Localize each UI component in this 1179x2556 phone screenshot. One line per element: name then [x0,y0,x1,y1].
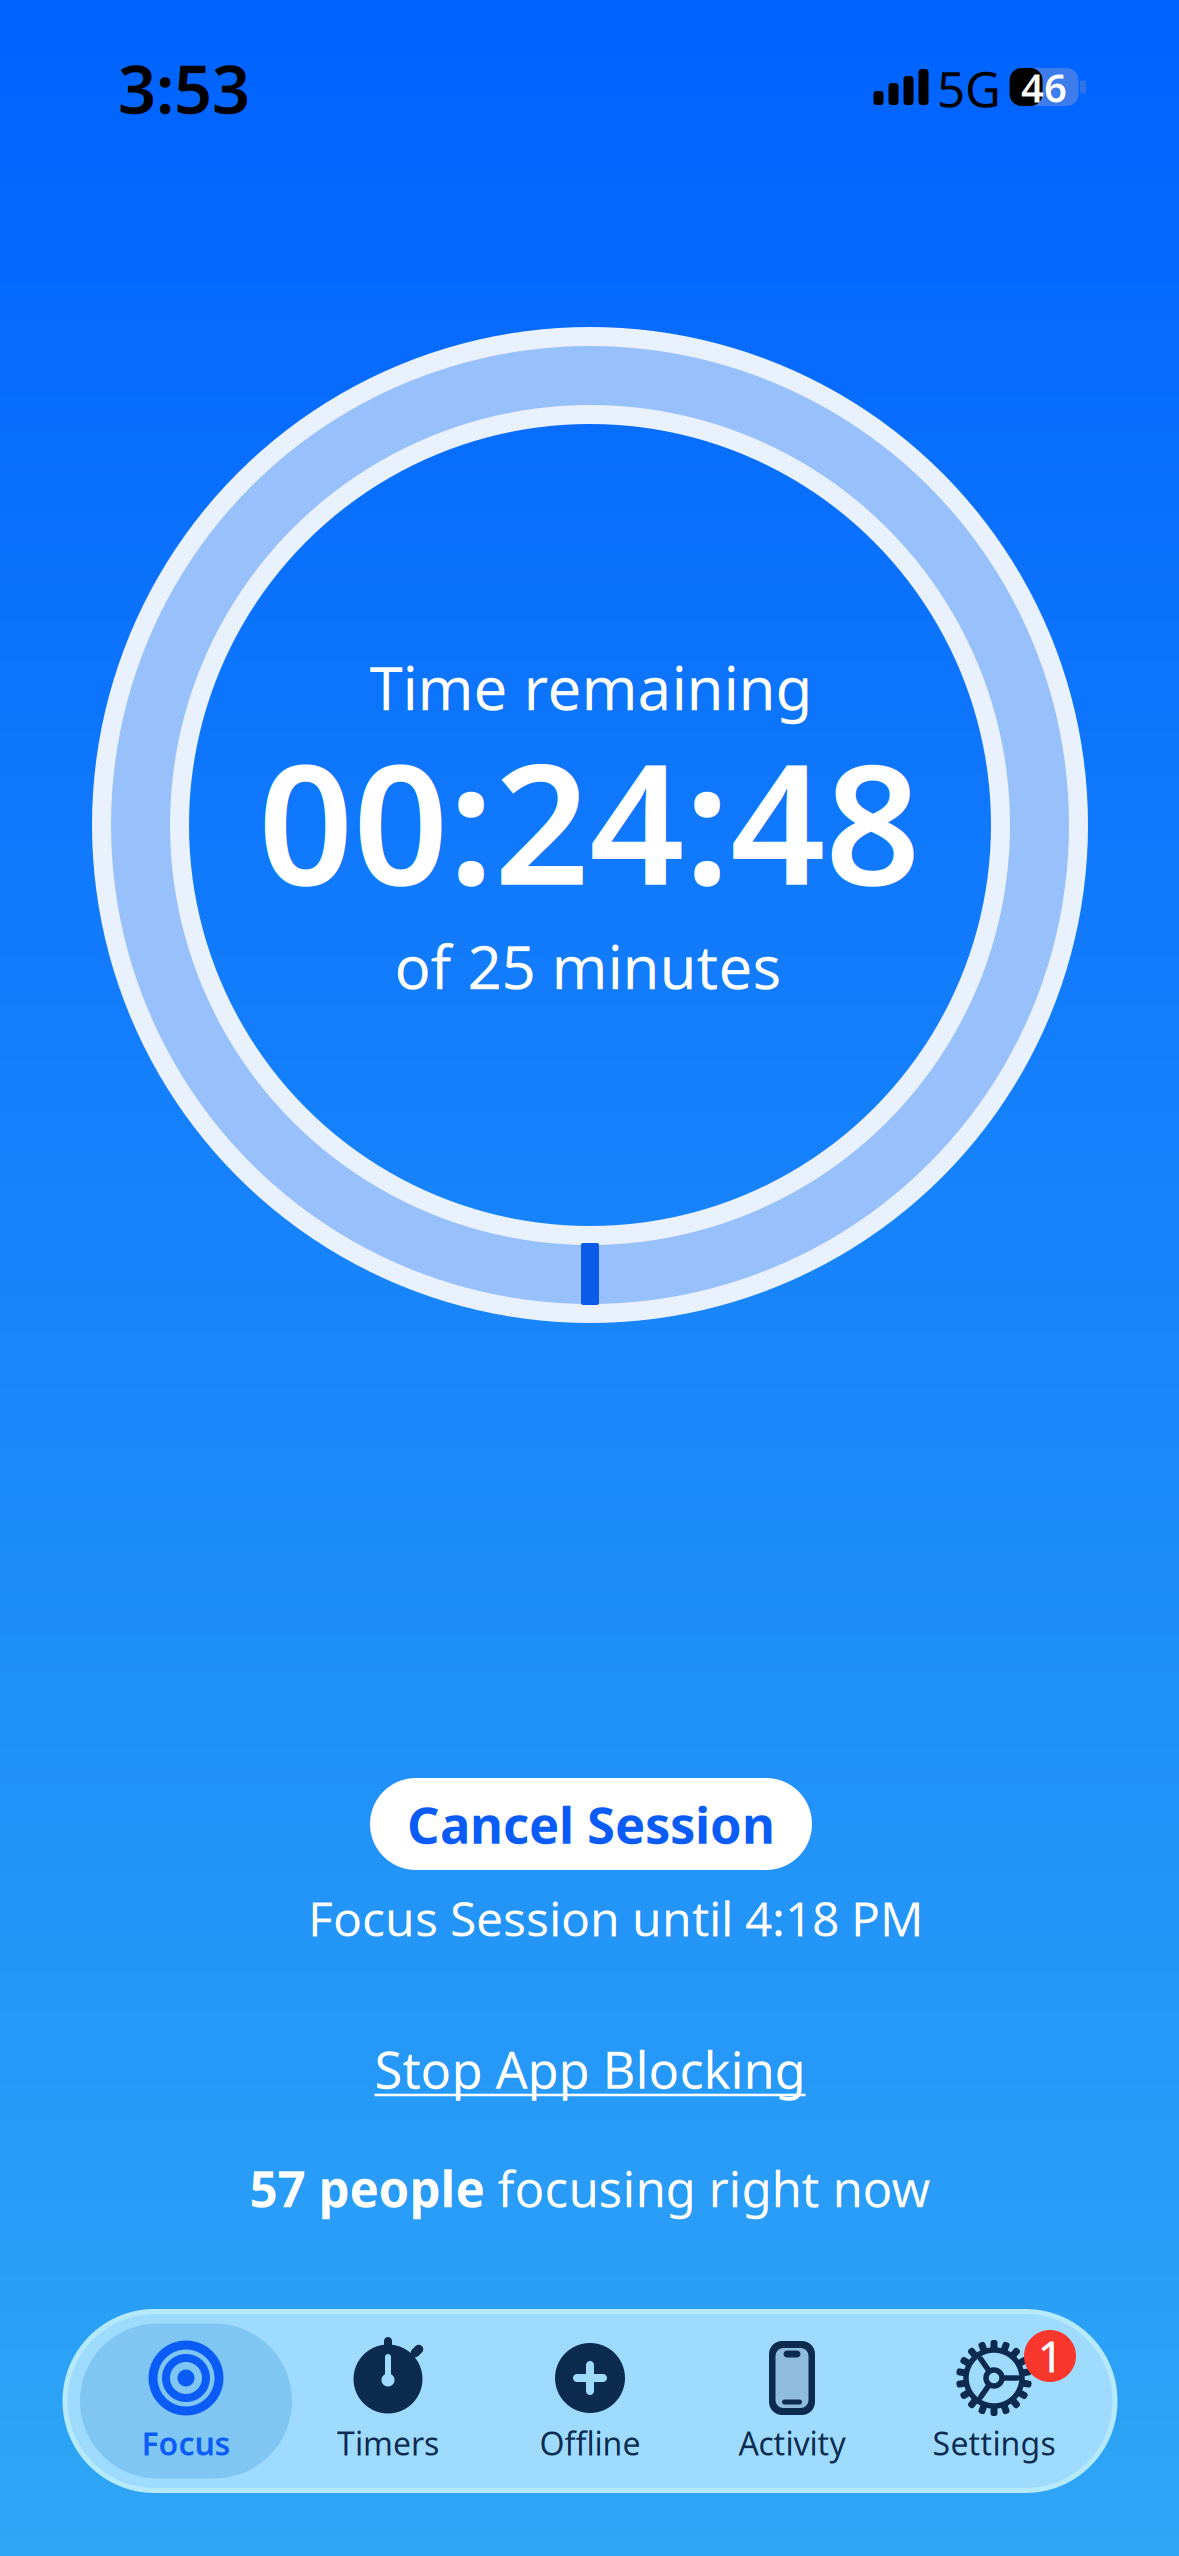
staticText: Focus [141,2422,230,2464]
button[interactable]: Stop App Blocking [374,2035,805,2103]
button[interactable]: Activity [691,2309,893,2493]
staticText: 57 people focusing right now [249,2155,930,2221]
staticText: 3:53 [118,44,250,132]
staticText: Offline [539,2422,640,2464]
staticText: 46 [1021,60,1067,113]
button[interactable]: Offline [489,2309,691,2493]
button[interactable]: Cancel Session [370,1778,812,1870]
staticText: of 25 minutes [394,926,781,1006]
button[interactable]: Focus [85,2309,287,2493]
button[interactable]: Settings [893,2309,1095,2493]
staticText: Stop App Blocking [374,2035,805,2103]
staticText: Activity [738,2422,845,2464]
staticText: Timers [337,2422,439,2464]
staticText: 00:24:48 [258,709,920,931]
button[interactable]: Timers [287,2309,489,2493]
staticText: 5G [937,55,1001,121]
staticText: Settings [932,2422,1055,2464]
staticText: Cancel Session [407,1790,775,1858]
staticText: Focus Session until 4:18 PM [308,1886,924,1950]
staticText: Time remaining [369,647,812,727]
staticText: 1 [1038,2328,1062,2384]
